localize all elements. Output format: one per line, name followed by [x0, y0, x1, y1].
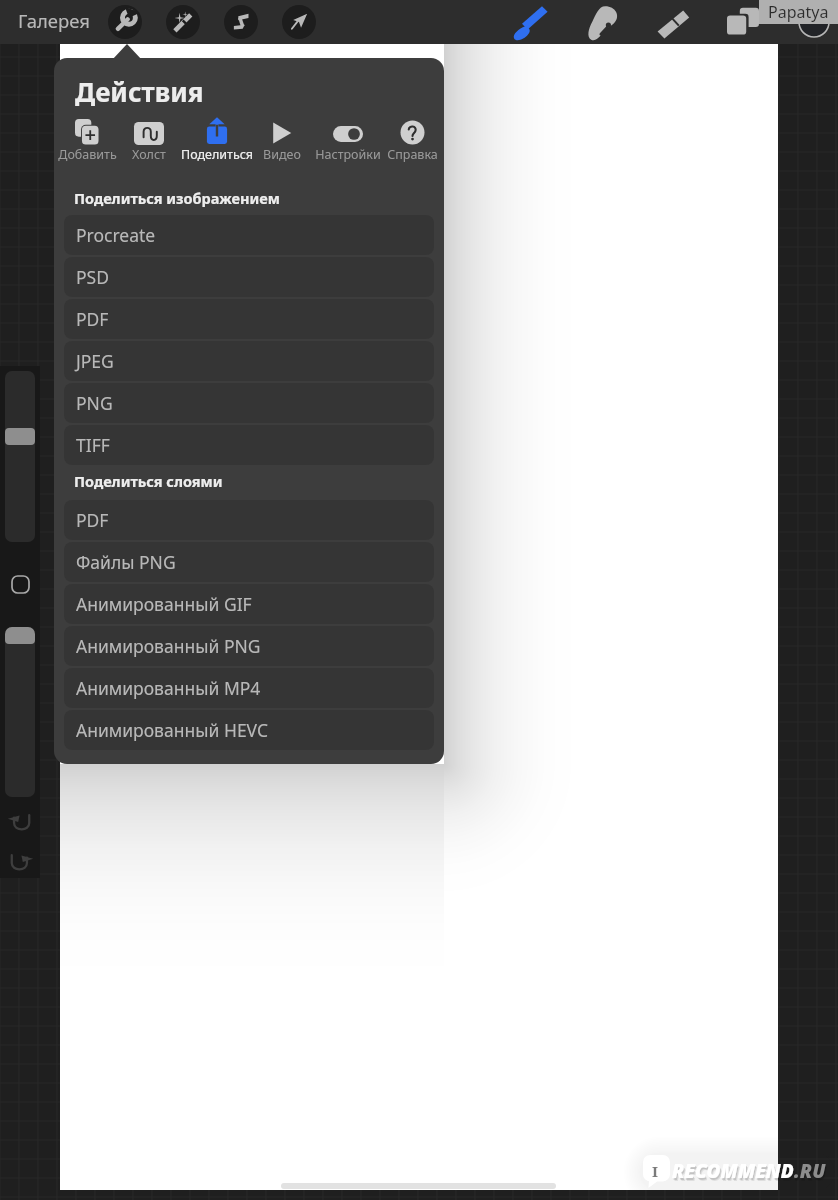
staticText: RECOMMEND: [672, 1158, 794, 1184]
button[interactable]: PNG: [64, 383, 434, 423]
button[interactable]: Анимированный MP4: [64, 668, 434, 708]
button[interactable]: Opacity: [5, 627, 35, 797]
button[interactable]: PSD: [64, 257, 434, 297]
staticText: Поделиться: [181, 146, 253, 163]
button[interactable]: Файлы PNG: [64, 542, 434, 582]
staticText: Холст: [132, 146, 166, 163]
staticText: Поделиться слоями: [74, 471, 223, 491]
button[interactable]: Papatya: [759, 0, 838, 24]
button[interactable]: Modify: [11, 575, 30, 594]
staticText: Papatya: [768, 1, 829, 23]
button[interactable]: Paint: [510, 3, 550, 43]
staticText: Действия: [75, 74, 204, 109]
button[interactable]: Procreate: [64, 215, 434, 255]
staticText: JPEG: [76, 349, 114, 373]
button[interactable]: Анимированный GIF: [64, 584, 434, 624]
staticText: RECOMMEND.RU: [674, 1161, 827, 1187]
button[interactable]: Undo: [9, 813, 32, 831]
staticText: Анимированный PNG: [76, 634, 261, 658]
staticText: Поделиться изображением: [74, 188, 280, 208]
button[interactable]: Настройки: [314, 116, 382, 160]
button[interactable]: Справка: [378, 116, 444, 160]
staticText: Анимированный MP4: [76, 676, 261, 700]
button[interactable]: Холст: [115, 116, 183, 160]
staticText: PDF: [76, 508, 109, 532]
button[interactable]: JPEG: [64, 341, 434, 381]
button[interactable]: Brush size: [5, 371, 35, 542]
button[interactable]: Видео: [248, 116, 316, 160]
staticText: .RU: [795, 1160, 827, 1186]
staticText: Файлы PNG: [76, 550, 176, 574]
staticText: Добавить: [58, 146, 117, 163]
button[interactable]: Colour: [798, 6, 830, 38]
staticText: Справка: [387, 146, 438, 163]
button[interactable]: Анимированный PNG: [64, 626, 434, 666]
button[interactable]: Поделиться: [183, 116, 251, 160]
button[interactable]: Selection: [224, 5, 258, 39]
button[interactable]: Adjustments: [108, 5, 142, 39]
button[interactable]: Erase: [652, 4, 692, 44]
staticText: PSD: [76, 265, 109, 289]
button[interactable]: Галерея: [18, 8, 90, 33]
staticText: TIFF: [76, 433, 110, 457]
button[interactable]: Redo: [9, 853, 32, 871]
staticText: I: [652, 1161, 659, 1181]
staticText: Анимированный HEVC: [76, 718, 268, 742]
button[interactable]: Анимированный HEVC: [64, 710, 434, 750]
staticText: .RU: [794, 1158, 826, 1184]
staticText: PDF: [76, 307, 109, 331]
staticText: Procreate: [76, 223, 156, 247]
button[interactable]: TIFF: [64, 425, 434, 465]
button[interactable]: Transform: [282, 5, 316, 39]
staticText: Анимированный GIF: [76, 592, 252, 616]
staticText: Настройки: [315, 146, 381, 163]
button[interactable]: PDF: [64, 299, 434, 339]
button[interactable]: PDF: [64, 500, 434, 540]
button[interactable]: Layers: [723, 3, 763, 43]
button[interactable]: Smudge: [582, 3, 622, 43]
staticText: Видео: [263, 146, 301, 163]
button[interactable]: Добавить: [54, 116, 121, 160]
staticText: RECOMMEND: [673, 1160, 795, 1186]
button[interactable]: Effects: [166, 5, 200, 39]
staticText: PNG: [76, 391, 113, 415]
